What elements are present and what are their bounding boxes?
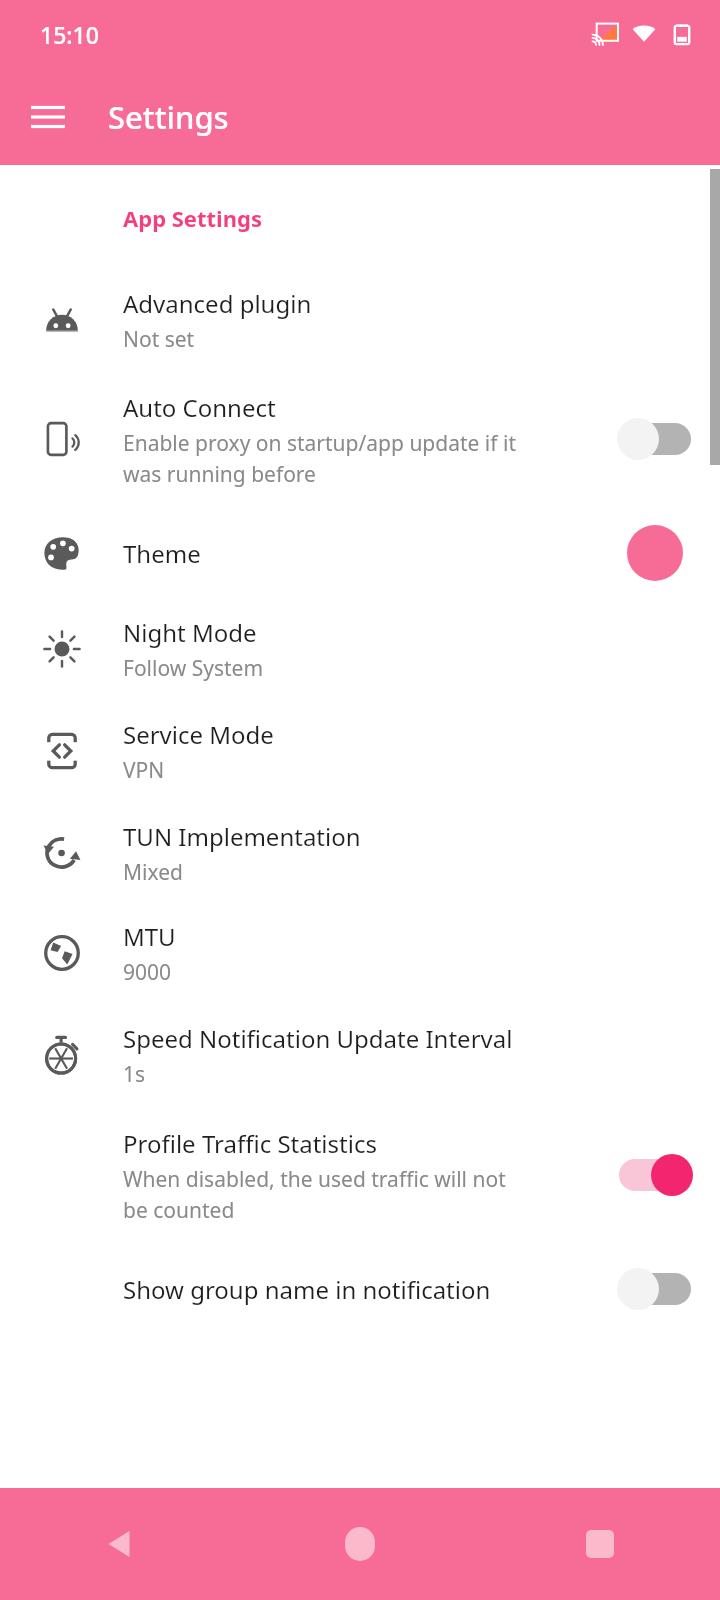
staticText: Mixed (123, 858, 183, 887)
button[interactable]: Service Mode (0, 699, 720, 803)
staticText: Service Mode (123, 718, 274, 751)
button[interactable]: Toggle, on (617, 1152, 693, 1198)
staticText: Not set (123, 325, 195, 354)
button[interactable]: Auto Connect (0, 371, 720, 507)
staticText: Theme (123, 537, 201, 570)
staticText: 15:10 (40, 19, 99, 50)
staticText: Night Mode (123, 616, 257, 649)
button[interactable]: Profile Traffic Statistics (0, 1107, 720, 1243)
staticText: MTU (123, 920, 176, 953)
staticText: When disabled, the used traffic will not… (123, 1165, 506, 1224)
staticText: Show group name in notification (123, 1273, 491, 1306)
button[interactable]: Advanced plugin (0, 269, 720, 371)
button[interactable]: Toggle, off (617, 1266, 693, 1312)
button[interactable]: MTU (0, 903, 720, 1003)
staticText: TUN Implementation (123, 820, 361, 853)
button[interactable]: Speed Notification Update Interval (0, 1003, 720, 1107)
button[interactable]: Back (0, 1488, 240, 1600)
button[interactable]: Show group name in notification (0, 1243, 720, 1335)
button[interactable]: TUN Implementation (0, 803, 720, 903)
staticText: Settings (108, 96, 229, 138)
staticText: Speed Notification Update Interval (123, 1022, 513, 1055)
button[interactable]: Theme (0, 507, 720, 599)
staticText: 9000 (123, 958, 172, 987)
staticText: Advanced plugin (123, 287, 312, 320)
button[interactable]: Recent apps (480, 1488, 720, 1600)
staticText: VPN (123, 756, 165, 785)
button[interactable]: Night Mode (0, 599, 720, 699)
staticText: App Settings (123, 203, 262, 233)
staticText: 1s (123, 1060, 146, 1089)
button[interactable]: Open navigation menu (18, 87, 78, 147)
button[interactable]: Toggle, off (617, 416, 693, 462)
button[interactable]: Home (240, 1488, 480, 1600)
staticText: Auto Connect (123, 391, 276, 424)
staticText: Follow System (123, 654, 264, 683)
staticText: Enable proxy on startup/app update if it… (123, 429, 516, 488)
staticText: Profile Traffic Statistics (123, 1127, 377, 1160)
